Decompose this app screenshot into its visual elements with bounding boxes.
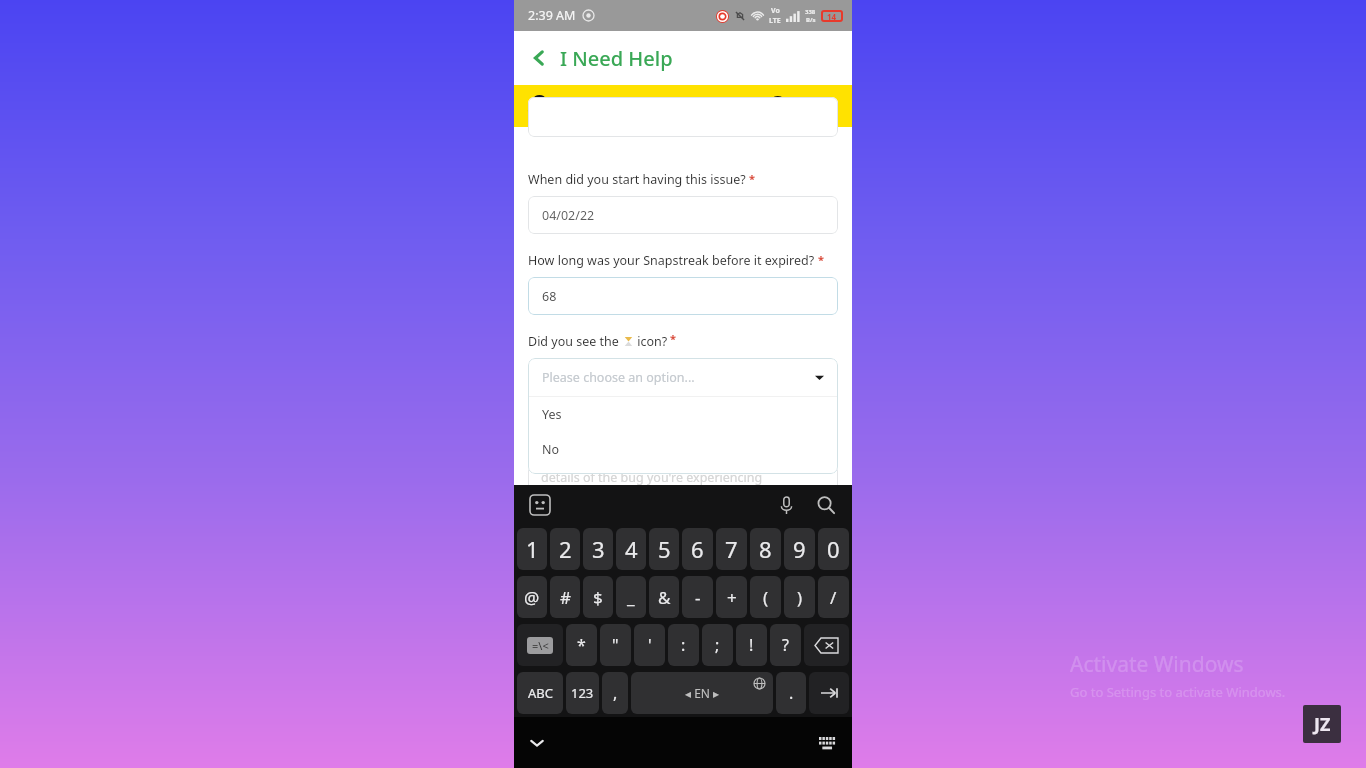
staticText: $ xyxy=(593,586,603,609)
button[interactable]: 7 xyxy=(716,528,747,570)
button[interactable]: ABC xyxy=(517,672,563,714)
button[interactable]: Backspace xyxy=(804,624,849,666)
staticText: ) xyxy=(797,586,803,609)
staticText: & xyxy=(658,586,671,609)
button[interactable]: No xyxy=(528,432,838,467)
button[interactable]: Tab xyxy=(809,672,849,714)
button[interactable]: Space xyxy=(631,672,773,714)
staticText: Vo xyxy=(771,6,780,16)
button[interactable]: ( xyxy=(750,576,781,618)
staticText: 9 xyxy=(793,534,806,564)
button[interactable]: Change keyboard xyxy=(819,737,836,749)
staticText: No xyxy=(542,441,560,458)
staticText: 2 xyxy=(559,534,572,564)
staticText: LTE xyxy=(769,16,781,26)
staticText: Go to Settings to activate Windows. xyxy=(1070,683,1286,701)
button[interactable]: ? xyxy=(770,624,801,666)
staticText: 338 xyxy=(805,8,816,16)
button[interactable]: # xyxy=(550,576,580,618)
staticText: When did you start having this issue? xyxy=(528,171,746,188)
button[interactable]: Search xyxy=(769,96,790,117)
button[interactable]: _ xyxy=(616,576,646,618)
staticText: =\< xyxy=(532,638,549,653)
button[interactable]: ! xyxy=(736,624,767,666)
staticText: Please choose an option... xyxy=(542,369,695,386)
staticText: / xyxy=(830,586,837,609)
staticText: # xyxy=(560,586,571,609)
staticText: JZ xyxy=(1314,712,1331,737)
staticText: 123 xyxy=(571,684,594,702)
staticText: . xyxy=(789,682,794,704)
staticText: ' xyxy=(648,634,652,656)
button[interactable]: , xyxy=(602,672,628,714)
staticText: 68 xyxy=(542,288,557,305)
button[interactable]: ) xyxy=(784,576,815,618)
button[interactable]: 1 xyxy=(517,528,547,570)
button[interactable]: * xyxy=(566,624,597,666)
button[interactable]: Back xyxy=(514,31,852,85)
button[interactable]: Please choose an option... xyxy=(528,358,838,396)
staticText: 5 xyxy=(658,534,671,564)
staticText: ( xyxy=(763,586,769,609)
button[interactable] xyxy=(528,97,838,137)
staticText: Did you see the xyxy=(528,333,623,350)
staticText: Yes xyxy=(542,406,562,423)
staticText: icon? xyxy=(634,333,668,350)
button[interactable]: 2 xyxy=(550,528,580,570)
button[interactable]: " xyxy=(600,624,631,666)
button[interactable]: 3 xyxy=(583,528,613,570)
staticText: ABC xyxy=(528,684,553,702)
button[interactable]: as why you think your account may be hac… xyxy=(528,444,838,524)
button[interactable]: $ xyxy=(583,576,613,618)
staticText: details of the bug you're experiencing xyxy=(541,469,763,486)
button[interactable]: Menu xyxy=(812,94,836,118)
staticText: * xyxy=(577,634,586,656)
button[interactable]: 9 xyxy=(784,528,815,570)
button[interactable]: Voice input xyxy=(778,497,795,514)
button[interactable]: ' xyxy=(634,624,665,666)
button[interactable]: 6 xyxy=(682,528,713,570)
staticText: 14 xyxy=(827,11,837,22)
button[interactable]: 68 xyxy=(528,277,838,315)
button[interactable]: Emoji xyxy=(530,495,550,515)
staticText: : xyxy=(681,634,686,656)
staticText: 3 xyxy=(592,534,605,564)
button[interactable]: - xyxy=(682,576,713,618)
button[interactable]: + xyxy=(716,576,747,618)
staticText: ; xyxy=(715,634,720,656)
staticText: 8 xyxy=(759,534,772,564)
button[interactable]: Search xyxy=(817,496,835,514)
staticText: _ xyxy=(627,586,635,609)
button[interactable]: Hide keyboard xyxy=(529,735,545,751)
staticText: * xyxy=(749,171,755,186)
button[interactable]: Yes xyxy=(528,397,838,432)
staticText: ! xyxy=(749,634,754,656)
button[interactable]: 123 xyxy=(566,672,599,714)
staticText: as why you think your account may be hac… xyxy=(541,449,827,466)
staticText: @ xyxy=(524,586,540,609)
button[interactable]: 04/02/22 xyxy=(528,196,838,234)
staticText: ? xyxy=(782,634,789,656)
other: Back xyxy=(530,49,548,67)
button[interactable]: JZ xyxy=(1303,705,1341,743)
staticText: + xyxy=(727,586,737,609)
staticText: 04/02/22 xyxy=(542,207,595,224)
staticText: Activate Windows xyxy=(1070,650,1244,679)
button[interactable]: 0 xyxy=(818,528,849,570)
button[interactable]: . xyxy=(776,672,806,714)
button[interactable]: & xyxy=(649,576,679,618)
staticText: 0 xyxy=(827,534,840,564)
staticText: - xyxy=(695,586,701,609)
button[interactable]: =\< xyxy=(517,624,563,666)
button[interactable]: 8 xyxy=(750,528,781,570)
button[interactable]: @ xyxy=(517,576,547,618)
staticText: * xyxy=(818,252,824,267)
button[interactable]: 5 xyxy=(649,528,679,570)
button[interactable]: : xyxy=(668,624,699,666)
button[interactable]: / xyxy=(818,576,849,618)
button[interactable]: 4 xyxy=(616,528,646,570)
staticText: ◂ EN ▸ xyxy=(685,685,720,701)
staticText: 4 xyxy=(625,534,638,564)
button[interactable]: Snapchat home xyxy=(527,94,552,119)
button[interactable]: ; xyxy=(702,624,733,666)
